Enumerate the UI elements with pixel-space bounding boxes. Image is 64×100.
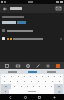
button[interactable]: Back — [2, 6, 8, 12]
button[interactable]: Edit — [35, 63, 41, 69]
button[interactable] — [39, 74, 45, 79]
button[interactable] — [49, 79, 56, 84]
button[interactable] — [15, 74, 21, 79]
button[interactable] — [27, 74, 33, 79]
button[interactable]: Recents — [35, 94, 43, 100]
button[interactable] — [21, 74, 27, 79]
button[interactable] — [1, 74, 8, 79]
button[interactable] — [51, 74, 57, 79]
button[interactable] — [18, 84, 24, 89]
button[interactable] — [6, 69, 19, 74]
button[interactable] — [45, 69, 58, 74]
button[interactable]: Crop — [4, 63, 10, 69]
button[interactable] — [14, 79, 21, 84]
button[interactable] — [28, 79, 35, 84]
button[interactable]: Brightness — [25, 63, 31, 69]
button[interactable]: Enter — [54, 89, 63, 94]
button[interactable]: Color — [56, 64, 60, 68]
button[interactable] — [42, 84, 48, 89]
button[interactable] — [1, 79, 7, 84]
button[interactable] — [2, 37, 62, 40]
button[interactable]: Back — [6, 94, 14, 100]
button[interactable] — [57, 74, 63, 79]
button[interactable]: Shift — [1, 84, 11, 89]
button[interactable] — [24, 84, 30, 89]
button[interactable]: Space — [16, 89, 47, 94]
button[interactable]: Menu — [50, 94, 58, 100]
button[interactable]: Image — [15, 63, 21, 69]
button[interactable]: More options — [55, 5, 62, 12]
button[interactable] — [26, 69, 39, 74]
button[interactable] — [35, 79, 42, 84]
button[interactable] — [36, 84, 42, 89]
button[interactable] — [33, 74, 39, 79]
button[interactable]: Contrast — [45, 63, 51, 69]
button[interactable]: Backspace — [54, 84, 63, 89]
button[interactable] — [11, 84, 18, 89]
button[interactable] — [56, 79, 63, 84]
button[interactable] — [21, 79, 28, 84]
button[interactable] — [30, 84, 36, 89]
button[interactable] — [7, 79, 14, 84]
button[interactable] — [42, 79, 49, 84]
button[interactable] — [45, 74, 51, 79]
button[interactable]: Home — [21, 94, 29, 100]
button[interactable] — [8, 74, 15, 79]
button[interactable] — [48, 84, 54, 89]
button[interactable]: Symbols — [1, 89, 9, 94]
